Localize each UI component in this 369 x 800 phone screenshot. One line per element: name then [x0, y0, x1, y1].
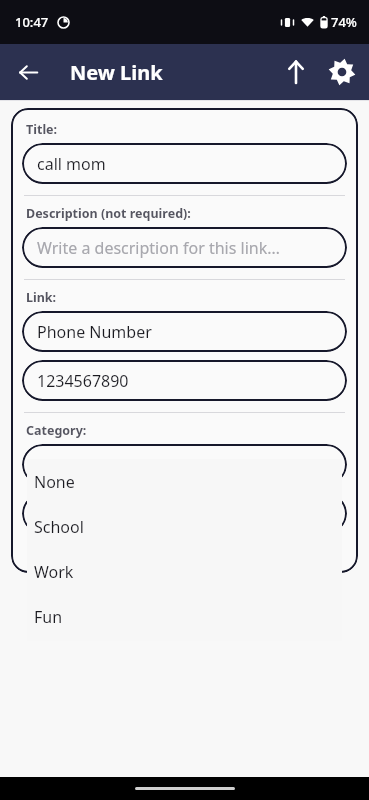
staticText: None — [34, 471, 75, 493]
button[interactable]: Phone Number — [22, 311, 347, 352]
staticText: 10:47 — [15, 13, 49, 31]
button[interactable]: call mom — [22, 143, 347, 184]
staticText: Title: — [26, 121, 58, 138]
staticText: Work — [34, 561, 74, 583]
staticText: Description (not required): — [26, 205, 191, 222]
staticText: 1234567890 — [37, 370, 129, 392]
staticText: Phone Number — [37, 321, 152, 343]
button[interactable]: None — [22, 444, 347, 485]
button[interactable]: Back — [6, 50, 50, 94]
staticText: Fun — [34, 606, 63, 628]
button[interactable]: School — [27, 504, 342, 549]
button[interactable]: Work — [27, 549, 342, 594]
staticText: Link: — [26, 289, 57, 306]
button[interactable]: Upload — [273, 49, 319, 95]
staticText: New Link — [70, 59, 163, 86]
button[interactable]: 1234567890 — [22, 360, 347, 401]
button[interactable]: Settings — [319, 49, 365, 95]
staticText: 74% — [331, 13, 357, 31]
button[interactable]: Write a description for this link… — [22, 227, 347, 268]
staticText: School — [34, 516, 84, 538]
button[interactable] — [22, 493, 347, 534]
button[interactable]: None — [27, 459, 342, 504]
button[interactable]: Fun — [27, 594, 342, 639]
staticText: Category: — [26, 422, 87, 439]
staticText: call mom — [37, 153, 106, 175]
staticText: Write a description for this link… — [37, 237, 280, 259]
